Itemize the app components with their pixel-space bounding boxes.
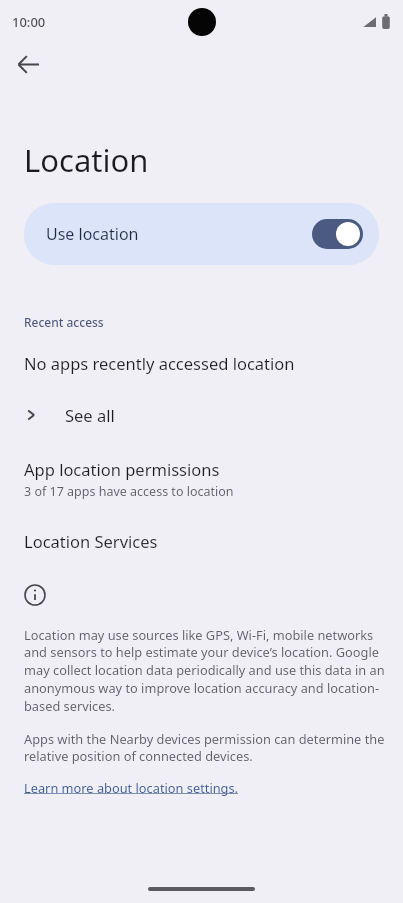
staticText: App location permissions xyxy=(24,458,220,480)
button[interactable]: Back xyxy=(8,44,48,84)
staticText: No apps recently accessed location xyxy=(24,352,295,374)
staticText: Location may use sources like GPS, Wi-Fi… xyxy=(24,626,386,714)
staticText: See all xyxy=(65,404,115,426)
button[interactable]: Location Services xyxy=(0,530,403,552)
staticText: Apps with the Nearby devices permission … xyxy=(24,730,386,764)
button[interactable]: See all xyxy=(0,400,403,430)
staticText: Use location xyxy=(46,223,139,245)
staticText: Location Services xyxy=(24,530,158,552)
button[interactable]: App location permissions xyxy=(0,458,403,500)
staticText: 3 of 17 apps have access to location xyxy=(24,483,234,500)
staticText: 10:00 xyxy=(12,13,46,31)
staticText: Recent access xyxy=(24,314,104,330)
button[interactable]: Use location xyxy=(24,203,379,265)
staticText: Location xyxy=(24,139,149,181)
button[interactable]: Learn more about location settings. xyxy=(0,777,263,798)
staticText: Learn more about location settings. xyxy=(24,779,239,796)
